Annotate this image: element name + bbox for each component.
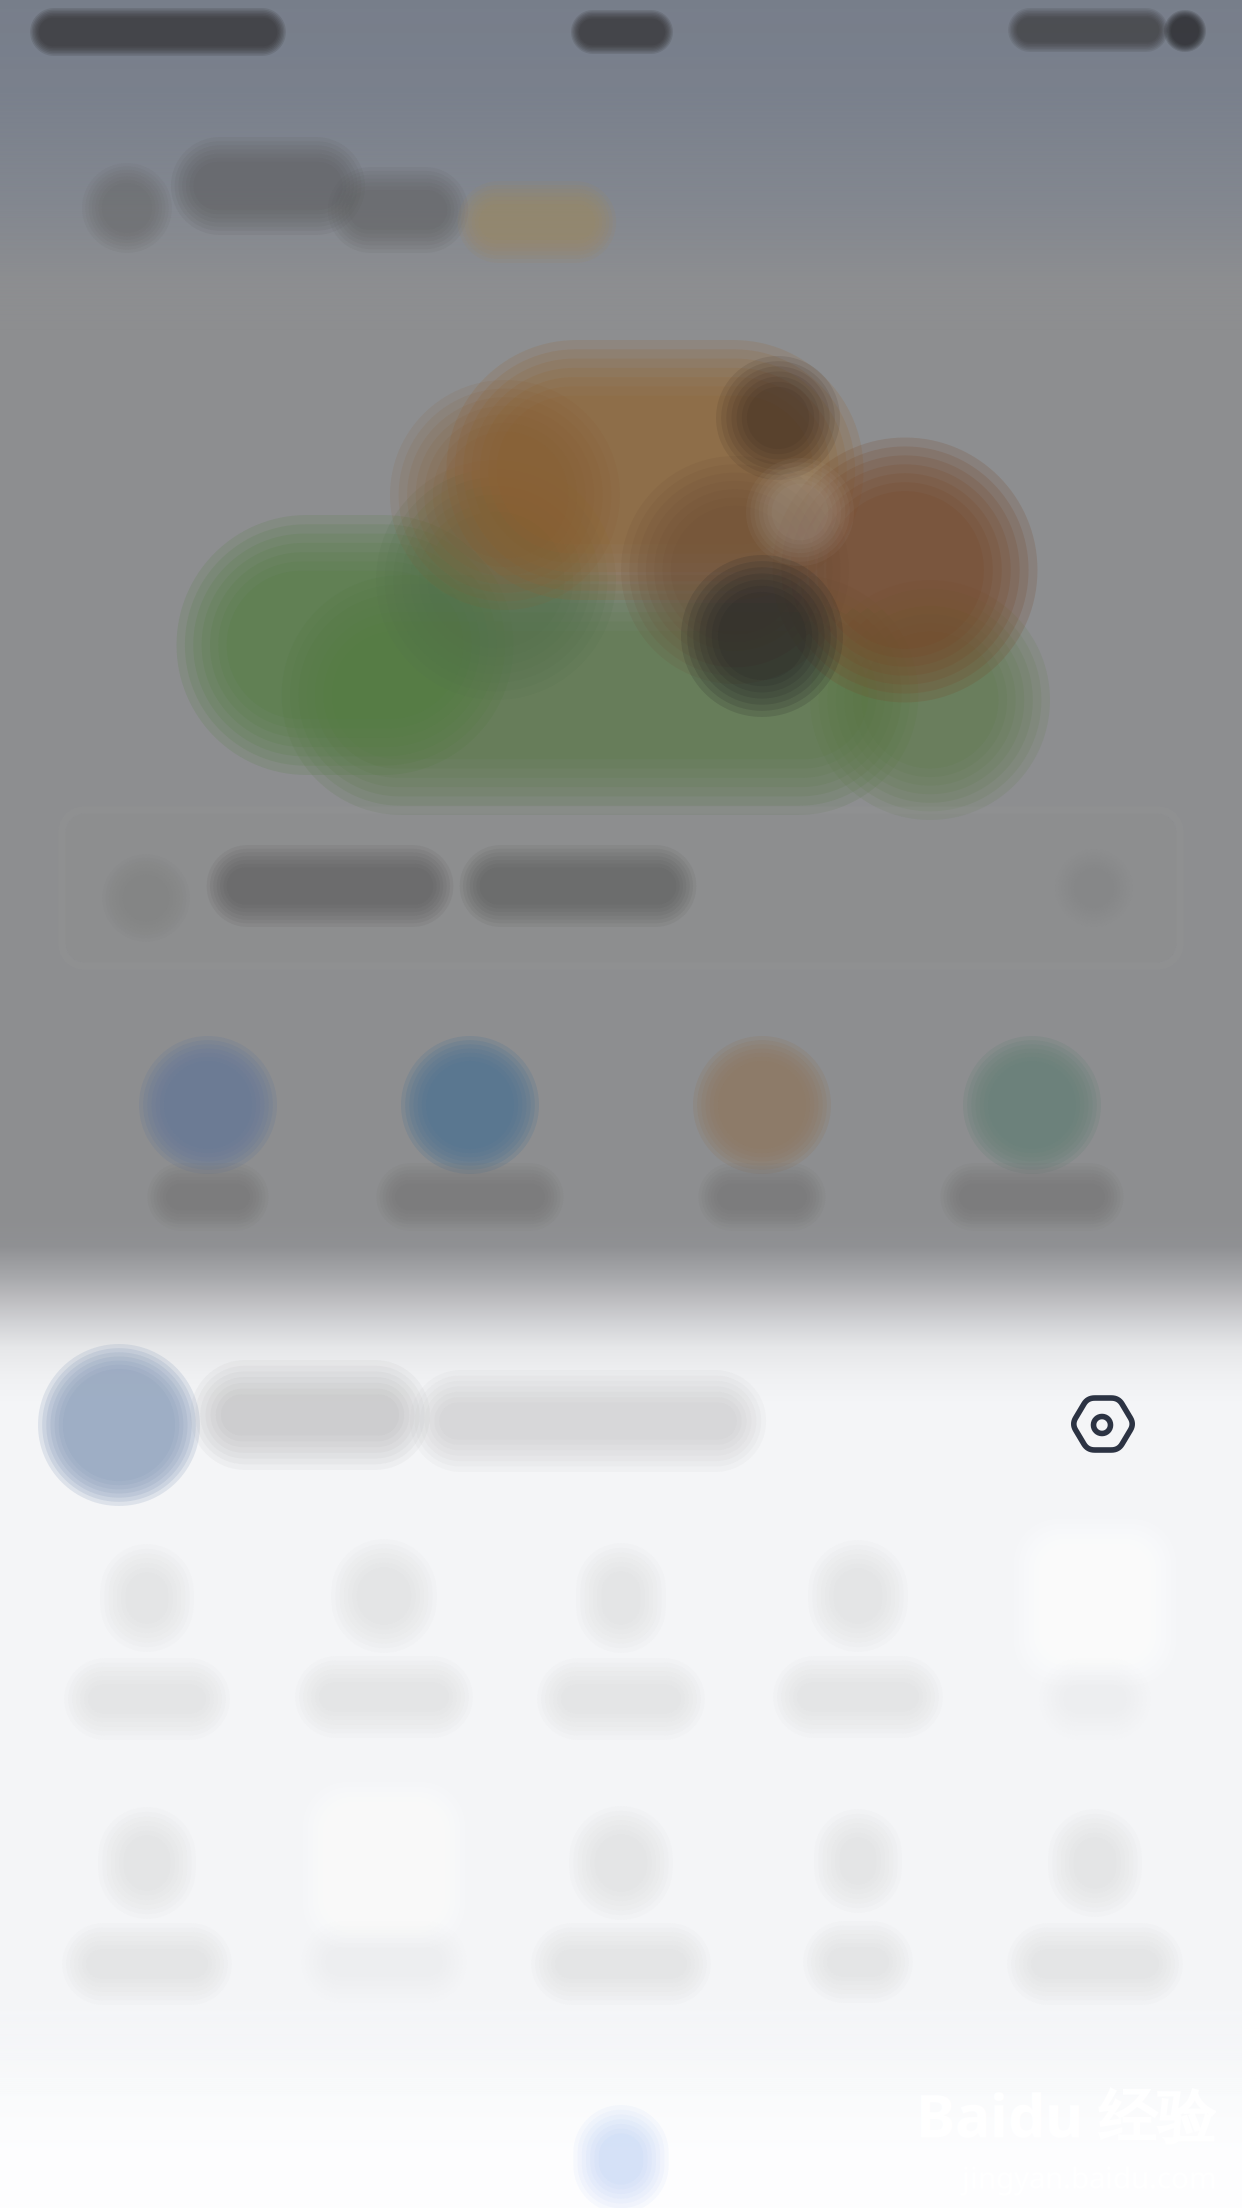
button[interactable]: Share target [0, 1420, 237, 1670]
button[interactable]: Share target [0, 1420, 237, 1670]
button[interactable]: Share target [0, 1420, 237, 1670]
button[interactable]: Share target [0, 1420, 237, 1670]
button[interactable]: Share target [0, 1420, 237, 1670]
button[interactable]: Share target [0, 1420, 237, 1670]
button[interactable]: Share target [0, 1420, 237, 1670]
button[interactable]: Options [1044, 1365, 1164, 1485]
button[interactable]: Share target [0, 1420, 237, 1670]
button[interactable]: Share target [0, 1420, 237, 1670]
button[interactable]: Share target [0, 1420, 237, 1670]
button[interactable]: Share target [0, 1420, 237, 1670]
button[interactable]: Share target [0, 1420, 237, 1670]
button[interactable]: Share target [0, 1420, 237, 1670]
